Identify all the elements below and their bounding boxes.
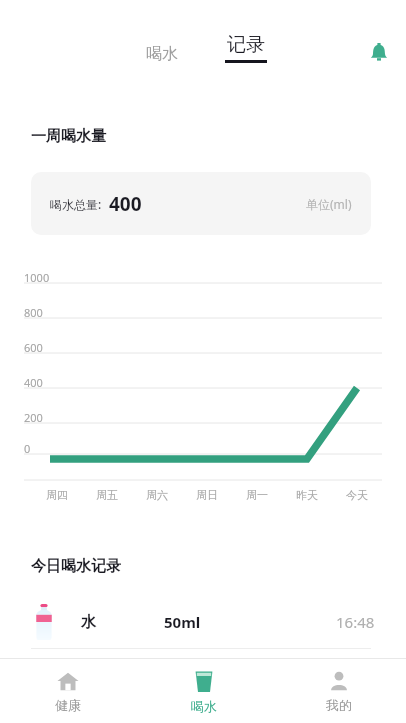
staticText: 400	[109, 191, 142, 217]
staticText: 记录	[227, 33, 265, 57]
staticText: 400	[24, 375, 43, 390]
staticText: 周五	[87, 488, 127, 502]
staticText: 50ml	[164, 612, 201, 632]
staticText: 今日喝水记录	[31, 557, 121, 576]
staticText: 16:48	[336, 612, 375, 632]
staticText: 今天	[337, 488, 377, 502]
staticText: 600	[24, 340, 43, 355]
staticText: 0	[24, 441, 31, 456]
staticText: 1000	[24, 270, 50, 285]
button[interactable]: 喝水	[136, 659, 271, 723]
staticText: 昨天	[287, 488, 327, 502]
button[interactable]: 喝水总量:	[31, 172, 371, 235]
staticText: 200	[24, 410, 43, 425]
staticText: 喝水	[146, 44, 178, 64]
button[interactable]: 记录	[218, 33, 274, 71]
staticText: 喝水	[191, 698, 217, 714]
button[interactable]: 喝水	[131, 38, 193, 70]
staticText: 周六	[137, 488, 177, 502]
staticText: 800	[24, 305, 43, 320]
staticText: 一周喝水量	[31, 127, 106, 146]
staticText: 单位(ml)	[306, 196, 352, 212]
button[interactable]: 健康	[0, 659, 136, 723]
staticText: 我的	[326, 697, 352, 713]
staticText: 周一	[237, 488, 277, 502]
staticText: 喝水总量:	[50, 196, 102, 212]
staticText: 周日	[187, 488, 227, 502]
button[interactable]: 水	[0, 596, 406, 648]
staticText: 健康	[55, 697, 81, 713]
button[interactable]: Notifications	[363, 37, 395, 69]
staticText: 水	[81, 613, 96, 632]
staticText: 周四	[37, 488, 77, 502]
button[interactable]: 我的	[271, 659, 406, 723]
